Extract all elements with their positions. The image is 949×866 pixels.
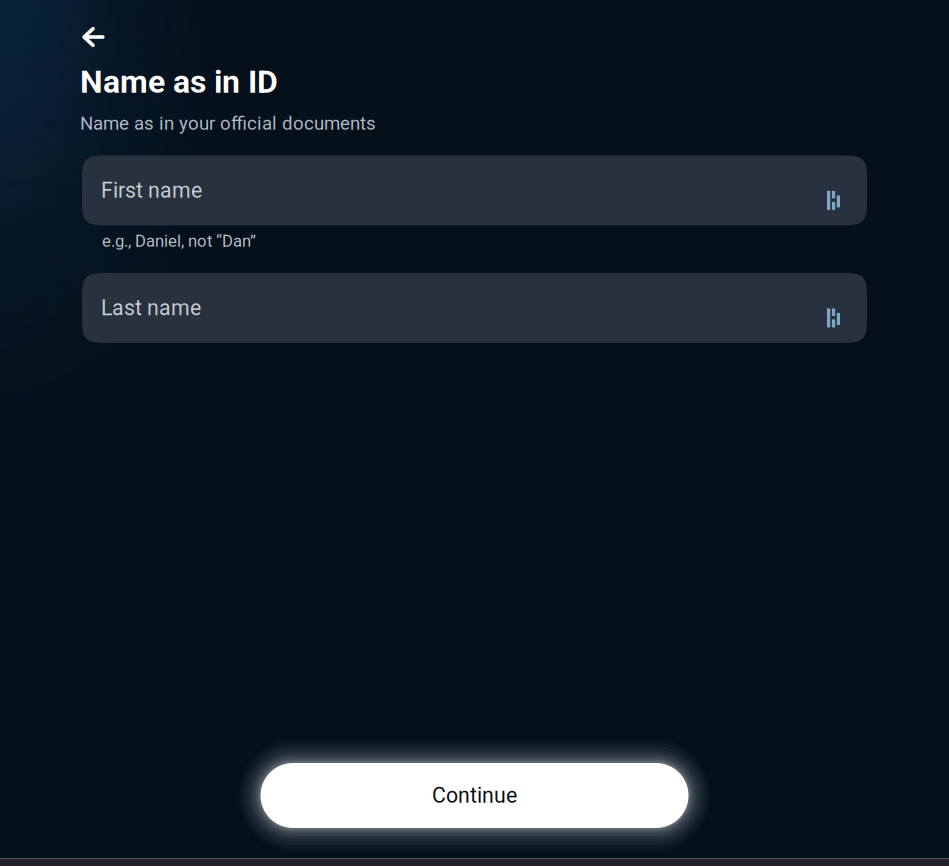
staticText: Name as in your official documents — [80, 112, 376, 134]
staticText: First name — [101, 178, 202, 203]
button[interactable]: Back — [0, 0, 129, 63]
staticText: Last name — [101, 295, 201, 320]
staticText: e.g., Daniel, not “Dan” — [102, 231, 256, 251]
staticText: Name as in ID — [80, 63, 278, 100]
staticText: Continue — [432, 783, 517, 808]
button[interactable]: Continue — [239, 742, 709, 849]
